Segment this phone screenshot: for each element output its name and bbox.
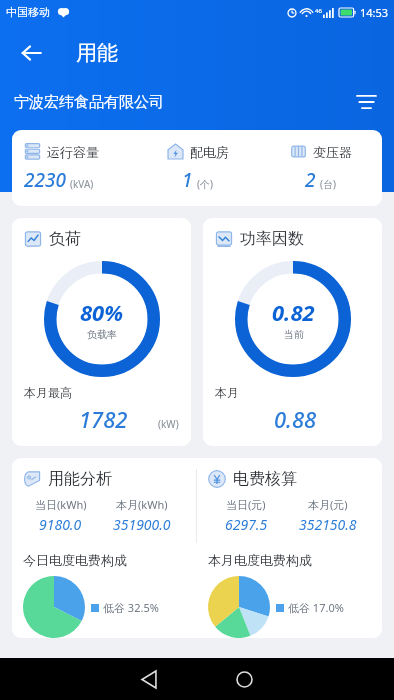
staticText: 本月(kWh) [116, 497, 168, 512]
staticText: 80% [80, 297, 124, 327]
button[interactable]: Menu [346, 82, 386, 122]
staticText: 变压器 [313, 144, 352, 160]
staticText: (台) [320, 177, 336, 191]
staticText: 低谷 32.5% [103, 600, 159, 615]
staticText: 用能 [76, 40, 118, 66]
staticText: 2 [305, 167, 316, 193]
staticText: 0.82 [272, 297, 315, 327]
staticText: 宁波宏纬食品有限公司 [14, 93, 164, 112]
staticText: 功率因数 [240, 229, 304, 249]
button[interactable]: Back [8, 30, 54, 76]
staticText: (个) [197, 177, 213, 191]
button[interactable]: 用能分析 [12, 458, 382, 638]
button[interactable]: 运行容量 [12, 130, 382, 206]
staticText: 46 [315, 7, 322, 15]
staticText: 配电房 [190, 144, 229, 160]
staticText: 352150.8 [299, 515, 357, 534]
staticText: 14:53 [360, 5, 389, 20]
staticText: 负载率 [87, 328, 117, 341]
staticText: 低谷 17.0% [288, 600, 344, 615]
staticText: 当日(kWh) [35, 497, 87, 512]
staticText: 本月 [215, 385, 239, 400]
staticText: 运行容量 [47, 144, 99, 160]
staticText: 0.88 [274, 404, 317, 434]
staticText: 负荷 [49, 229, 81, 249]
staticText: 本月电度电费构成 [208, 552, 312, 568]
button[interactable]: Back [126, 658, 174, 700]
staticText: 2230 [24, 167, 66, 193]
staticText: 中国移动 [6, 5, 50, 19]
staticText: 今日电度电费构成 [23, 552, 127, 568]
staticText: 当日(元) [226, 497, 266, 512]
staticText: 1 [182, 167, 193, 193]
staticText: 电费核算 [233, 469, 297, 489]
staticText: 351900.0 [113, 515, 171, 534]
button[interactable]: 功率因数 [203, 218, 382, 446]
staticText: 1782 [79, 404, 128, 434]
staticText: 6297.5 [225, 515, 268, 534]
staticText: (kVA) [70, 177, 94, 191]
staticText: 9180.0 [39, 515, 82, 534]
button[interactable]: 负荷 [12, 218, 191, 446]
staticText: 本月最高 [24, 385, 72, 400]
staticText: 用能分析 [48, 469, 112, 489]
staticText: (kW) [158, 417, 179, 431]
staticText: 本月(元) [308, 497, 348, 512]
button[interactable]: Home [220, 658, 268, 700]
staticText: 当前 [284, 328, 304, 341]
